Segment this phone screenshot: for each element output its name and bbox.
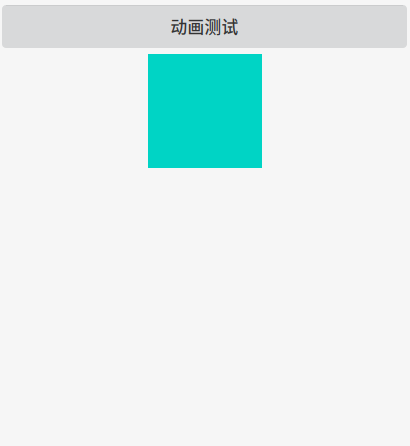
staticText: 动画测试	[170, 14, 238, 38]
button[interactable]: 动画测试	[2, 5, 407, 48]
